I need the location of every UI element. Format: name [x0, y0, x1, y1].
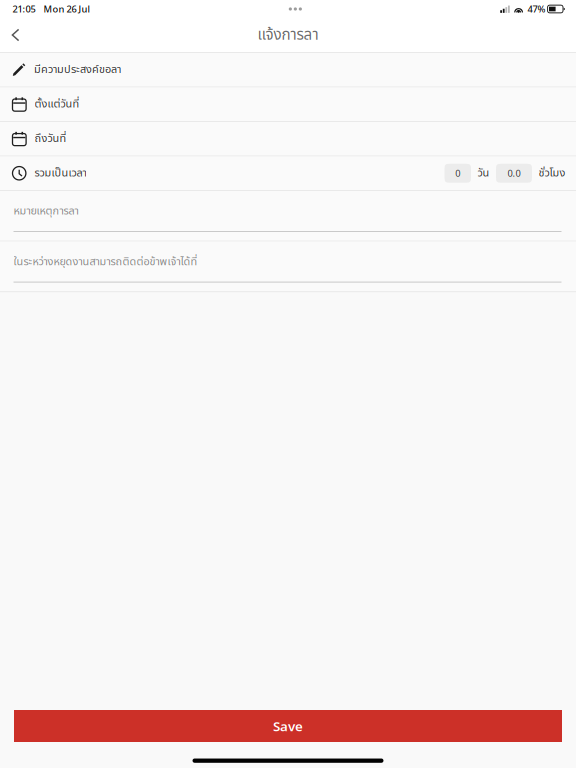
staticText: ในระหว่างหยุดงานสามารถติดต่อข้าพเจ้าได้ท…: [13, 254, 197, 270]
staticText: Mon 26 Jul: [43, 3, 90, 15]
staticText: วัน: [477, 165, 489, 181]
button[interactable]: ตั้งแต่วันที่: [0, 87, 576, 122]
staticText: หมายเหตุการลา: [13, 203, 78, 219]
staticText: ตั้งแต่วันที่: [35, 96, 80, 112]
staticText: 47%: [528, 3, 546, 15]
staticText: ชั่วโมง: [538, 165, 565, 181]
staticText: 0.0: [507, 167, 520, 179]
staticText: 0: [455, 167, 460, 179]
staticText: มีความประสงค์ขอลา: [34, 61, 121, 78]
staticText: รวมเป็นเวลา: [34, 165, 86, 181]
button[interactable]: มีความประสงค์ขอลา: [0, 53, 576, 87]
button[interactable]: ในระหว่างหยุดงานสามารถติดต่อข้าพเจ้าได้ท…: [0, 242, 576, 292]
staticText: 21:05: [12, 3, 35, 15]
button[interactable]: ถึงวันที่: [0, 122, 576, 156]
button[interactable]: หมายเหตุการลา: [0, 191, 576, 242]
staticText: Save: [273, 717, 303, 735]
staticText: แจ้งการลา: [257, 23, 318, 46]
button[interactable]: Back: [3, 18, 27, 52]
button[interactable]: Save: [14, 710, 562, 742]
staticText: ถึงวันที่: [35, 130, 67, 147]
